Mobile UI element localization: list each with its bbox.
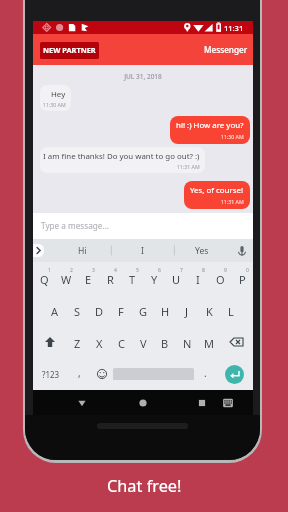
staticText: B <box>161 336 169 351</box>
button[interactable]: U <box>165 262 187 294</box>
staticText: Y <box>151 272 158 287</box>
button[interactable]: T <box>121 262 143 294</box>
staticText: Type a message... <box>41 220 110 231</box>
staticText: X <box>96 336 103 351</box>
button[interactable]: P <box>231 262 253 294</box>
staticText: F <box>118 304 124 319</box>
staticText: 2 <box>70 267 73 274</box>
staticText: Hey <box>51 89 66 100</box>
button[interactable]: D <box>88 294 110 326</box>
button[interactable]: M <box>198 326 220 358</box>
staticText: W <box>61 272 72 287</box>
staticText: J <box>185 304 189 319</box>
button[interactable]: More suggestions <box>33 244 44 257</box>
button[interactable]: V <box>132 326 154 358</box>
button[interactable]: Switch keyboard <box>217 390 239 415</box>
staticText: Z <box>74 336 81 351</box>
staticText: 0 <box>246 267 249 274</box>
button[interactable]: I <box>187 262 209 294</box>
button[interactable]: Backspace <box>220 326 253 358</box>
staticText: I am fine thanks! Do you want to go out?… <box>43 151 200 162</box>
button[interactable]: F <box>110 294 132 326</box>
staticText: Yes, of course! <box>190 185 244 196</box>
button[interactable]: J <box>176 294 198 326</box>
staticText: 11:31 <box>224 23 244 33</box>
staticText: G <box>139 304 148 319</box>
staticText: I <box>141 245 144 257</box>
staticText: V <box>140 336 147 351</box>
button[interactable]: Recent apps <box>191 390 213 415</box>
staticText: 9 <box>224 267 227 274</box>
button[interactable]: L <box>220 294 242 326</box>
staticText: I <box>196 272 200 287</box>
button[interactable]: Hey <box>40 85 71 111</box>
button[interactable]: NEW PARTNER <box>40 42 99 59</box>
staticText: K <box>206 304 213 319</box>
button[interactable]: Shift <box>33 326 66 358</box>
staticText: T <box>129 272 136 287</box>
button[interactable]: S <box>66 294 88 326</box>
button[interactable]: ?123 <box>33 358 68 390</box>
staticText: 5 <box>136 267 139 274</box>
button[interactable]: A <box>44 294 66 326</box>
button[interactable]: W <box>55 262 77 294</box>
staticText: 1 <box>48 267 51 274</box>
button[interactable]: B <box>154 326 176 358</box>
button[interactable]: X <box>88 326 110 358</box>
button[interactable]: . <box>194 358 216 390</box>
staticText: 11:31 AM <box>221 198 244 205</box>
button[interactable]: H <box>154 294 176 326</box>
button[interactable]: Home <box>132 392 154 414</box>
button[interactable]: I am fine thanks! Do you want to go out?… <box>40 147 205 173</box>
staticText: 11:31 AM <box>177 163 200 170</box>
button[interactable]: K <box>198 294 220 326</box>
staticText: R <box>107 272 114 287</box>
button[interactable]: Y <box>143 262 165 294</box>
staticText: Chat free! <box>107 475 182 497</box>
button[interactable]: Yes <box>187 239 217 262</box>
staticText: ?123 <box>42 369 60 380</box>
staticText: A <box>51 304 59 319</box>
staticText: NEW PARTNER <box>43 45 96 55</box>
button[interactable]: G <box>132 294 154 326</box>
button[interactable]: Z <box>66 326 88 358</box>
staticText: Yes <box>195 245 209 257</box>
button[interactable]: Send <box>225 365 244 384</box>
button[interactable]: N <box>176 326 198 358</box>
staticText: P <box>239 272 246 287</box>
staticText: 7 <box>180 267 183 274</box>
button[interactable]: C <box>110 326 132 358</box>
staticText: Q <box>40 272 49 287</box>
button[interactable]: Voice input <box>231 239 253 262</box>
staticText: Messenger <box>204 44 248 55</box>
button[interactable]: E <box>77 262 99 294</box>
staticText: 8 <box>202 267 205 274</box>
staticText: 6 <box>158 267 161 274</box>
staticText: D <box>95 304 104 319</box>
button[interactable]: Yes, of course! <box>184 181 250 209</box>
staticText: U <box>172 272 181 287</box>
staticText: 3 <box>92 267 95 274</box>
staticText: S <box>74 304 81 319</box>
staticText: 4 <box>114 267 117 274</box>
staticText: C <box>118 336 125 351</box>
staticText: N <box>183 336 192 351</box>
staticText: 11:30 AM <box>221 133 244 140</box>
button[interactable]: Emoji <box>90 358 113 390</box>
staticText: E <box>85 272 92 287</box>
button[interactable]: Hi <box>67 239 97 262</box>
staticText: M <box>204 336 214 351</box>
button[interactable]: Back <box>71 390 93 415</box>
button[interactable]: R <box>99 262 121 294</box>
staticText: . <box>204 366 207 380</box>
staticText: 11:30 AM <box>43 101 66 108</box>
staticText: H <box>161 304 170 319</box>
button[interactable]: , <box>68 358 90 390</box>
button[interactable]: O <box>209 262 231 294</box>
button[interactable]: I <box>127 239 157 262</box>
button[interactable]: Q <box>33 262 55 294</box>
button[interactable]: hi! :) How are you? <box>170 116 250 144</box>
button[interactable]: Type a message... <box>33 213 253 239</box>
staticText: , <box>78 366 81 380</box>
